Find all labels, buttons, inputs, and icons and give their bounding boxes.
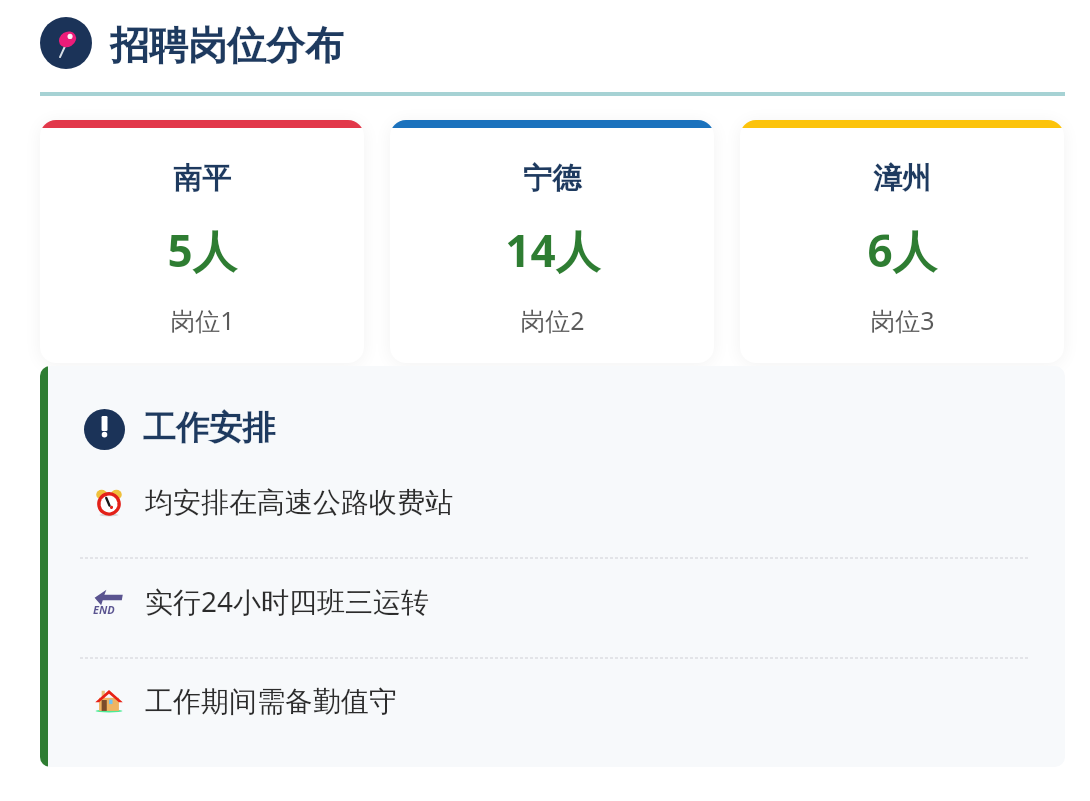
button[interactable]: Home	[40, 667, 1065, 735]
other: Home	[93, 685, 125, 717]
staticText: END	[93, 602, 115, 617]
staticText: 岗位3	[870, 303, 935, 337]
staticText: 宁德	[523, 160, 581, 197]
other: Alarm clock	[93, 486, 125, 518]
staticText: 14人	[505, 220, 600, 280]
button[interactable]: 南平	[40, 120, 364, 363]
staticText: 工作期间需备勤值守	[145, 684, 397, 719]
staticText: 6人	[867, 220, 937, 280]
staticText: 岗位1	[170, 303, 235, 337]
button[interactable]: Alarm clock	[40, 468, 1065, 536]
staticText: 5人	[167, 220, 237, 280]
staticText: 招聘岗位分布	[110, 21, 344, 70]
staticText: 工作安排	[143, 407, 275, 449]
staticText: 漳州	[873, 160, 931, 197]
other: Notice	[84, 409, 125, 450]
staticText: 实行24小时四班三运转	[145, 582, 430, 620]
other: End arrow	[93, 585, 125, 617]
staticText: 岗位2	[520, 303, 585, 337]
staticText: 南平	[173, 160, 231, 197]
other: Location	[40, 17, 92, 69]
button[interactable]: End arrow	[40, 567, 1065, 635]
button[interactable]: 宁德	[390, 120, 714, 363]
staticText: 均安排在高速公路收费站	[145, 485, 453, 520]
button[interactable]: 漳州	[740, 120, 1064, 363]
